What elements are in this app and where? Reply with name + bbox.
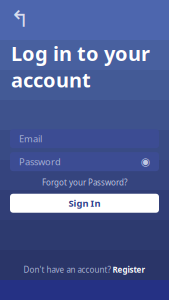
staticText: ↰: [10, 6, 29, 32]
button[interactable]: Forgot your Password?: [38, 175, 131, 190]
staticText: Password: [19, 155, 61, 168]
staticText: Email: [19, 132, 42, 145]
button[interactable]: Password: [10, 152, 159, 171]
staticText: Sign In: [68, 197, 100, 209]
button[interactable]: Sign In: [10, 194, 159, 213]
button[interactable]: Don't have an account?: [19, 261, 149, 278]
button[interactable]: Email: [10, 129, 159, 148]
staticText: ◉: [141, 156, 150, 168]
button[interactable]: Back: [9, 8, 31, 30]
staticText: Log in to your account: [11, 40, 150, 93]
staticText: Don't have an account?: [23, 264, 110, 275]
staticText: Forgot your Password?: [42, 177, 127, 188]
staticText: Register: [112, 264, 145, 275]
